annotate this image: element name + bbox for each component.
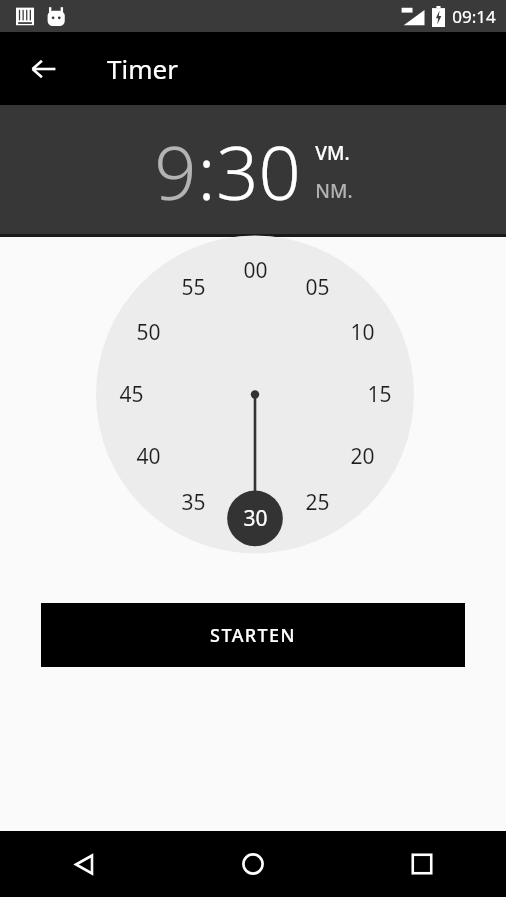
staticText: 25 xyxy=(305,488,330,516)
staticText: VM. xyxy=(315,140,350,166)
staticText: 45 xyxy=(119,380,144,408)
staticText: 05 xyxy=(305,273,330,301)
staticText: STARTEN xyxy=(210,623,296,648)
button[interactable]: STARTEN xyxy=(41,603,465,667)
staticText: 55 xyxy=(181,273,206,301)
staticText: : xyxy=(197,121,216,222)
staticText: 50 xyxy=(136,318,161,346)
staticText: 09:14 xyxy=(452,5,496,28)
button[interactable]: VM. xyxy=(315,140,350,166)
staticText: 15 xyxy=(367,380,392,408)
staticText: 10 xyxy=(350,318,375,346)
staticText: 00 xyxy=(243,256,268,284)
staticText: Timer xyxy=(107,51,178,86)
button[interactable]: 30 xyxy=(216,121,301,222)
staticText: 9 xyxy=(154,121,197,222)
staticText: 30 xyxy=(243,504,268,532)
button[interactable]: Minute picker dial xyxy=(0,237,506,577)
button[interactable]: Recent apps xyxy=(337,831,506,897)
staticText: 30 xyxy=(216,121,301,222)
staticText: 40 xyxy=(136,442,161,470)
button[interactable]: Home xyxy=(168,831,337,897)
button[interactable]: Back xyxy=(0,831,168,897)
staticText: 35 xyxy=(181,488,206,516)
button[interactable]: Back xyxy=(20,45,68,93)
button[interactable]: NM. xyxy=(315,178,353,204)
staticText: NM. xyxy=(315,178,353,204)
staticText: 20 xyxy=(350,442,375,470)
button[interactable]: 9 xyxy=(154,121,197,222)
